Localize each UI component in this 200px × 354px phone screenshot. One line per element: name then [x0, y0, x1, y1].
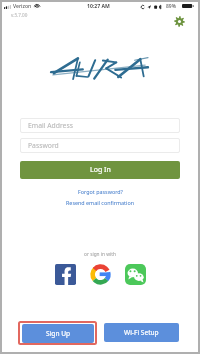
button[interactable]: Forgot password? [74, 187, 127, 196]
button[interactable]: Wi-Fi Setup [104, 323, 179, 342]
staticText: 89% [166, 3, 176, 10]
button[interactable]: Log In [20, 161, 180, 179]
button[interactable]: Sign in with Facebook [55, 264, 76, 285]
button[interactable]: Resend email confirmation [62, 198, 138, 207]
staticText: or sign in with [84, 251, 116, 258]
button[interactable]: Email Address [20, 118, 180, 133]
staticText: Log In [90, 165, 111, 175]
staticText: 10:27 AM [87, 3, 110, 10]
staticText: v.5.7.00 [11, 12, 28, 18]
other: AURA [52, 57, 148, 84]
staticText: Password [28, 141, 59, 150]
staticText: Verizon [13, 3, 32, 10]
button[interactable]: Sign in with WeChat [125, 264, 146, 285]
button[interactable]: Password [20, 138, 180, 153]
button[interactable]: Settings [170, 12, 188, 30]
staticText: Email Address [28, 121, 73, 130]
button[interactable]: Sign in with Google [90, 264, 111, 285]
staticText: Sign Up [46, 329, 71, 338]
staticText: Wi-Fi Setup [124, 328, 159, 337]
button[interactable]: Sign Up [22, 324, 94, 343]
